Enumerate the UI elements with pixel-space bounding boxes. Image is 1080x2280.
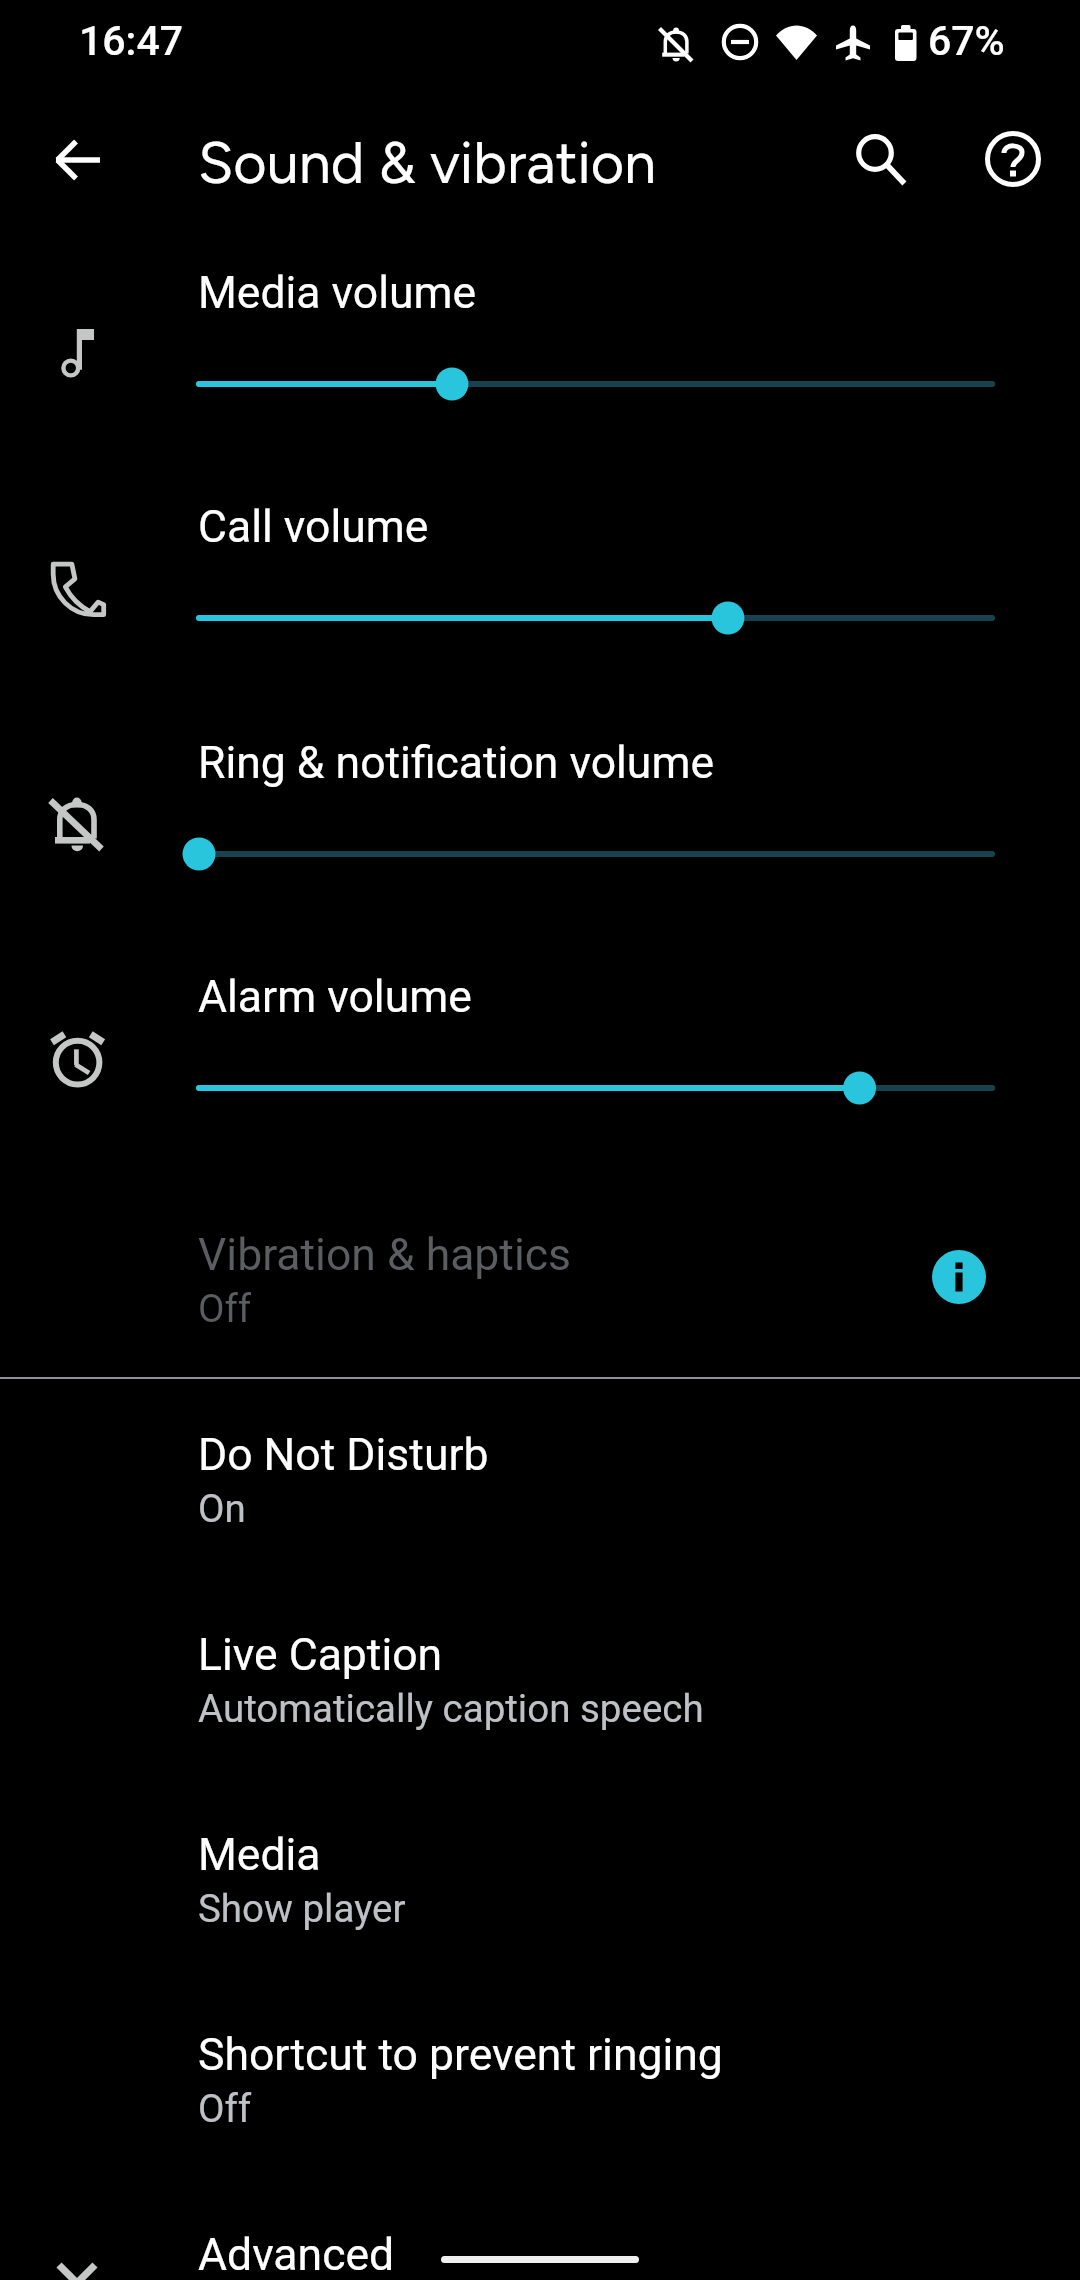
staticText: Automatically caption speech xyxy=(198,1686,704,1731)
button[interactable]: Do Not Disturb xyxy=(0,1381,1080,1561)
staticText: Do Not Disturb xyxy=(198,1429,489,1481)
staticText: Advanced xyxy=(198,2229,395,2280)
button[interactable]: Media xyxy=(0,1781,1080,1961)
button[interactable]: Navigate up xyxy=(30,113,124,207)
button[interactable]: Advanced xyxy=(0,2198,1080,2280)
staticText: Vibration & haptics xyxy=(198,1229,571,1281)
button[interactable]: Help xyxy=(966,112,1060,206)
button[interactable]: Search settings xyxy=(829,112,923,206)
button[interactable]: Live Caption xyxy=(0,1581,1080,1761)
button[interactable]: Call volume xyxy=(0,468,1080,683)
staticText: Off xyxy=(198,1286,252,1331)
staticText: 67% xyxy=(928,17,1005,65)
staticText: Ring & notification volume xyxy=(198,737,715,789)
staticText: Show player xyxy=(198,1886,406,1931)
button[interactable]: Ring & notification volume xyxy=(0,704,1080,919)
staticText: Call volume xyxy=(198,501,429,553)
button[interactable]: Shortcut to prevent ringing xyxy=(0,1981,1080,2161)
button[interactable]: Media volume xyxy=(0,234,1080,449)
button[interactable]: Alarm volume xyxy=(0,938,1080,1153)
staticText: Live Caption xyxy=(198,1629,443,1681)
staticText: Media volume xyxy=(198,267,477,319)
staticText: Sound & vibration xyxy=(198,128,657,197)
staticText: 16:47 xyxy=(79,17,184,65)
button[interactable]: Vibration & haptics xyxy=(0,1181,1080,1361)
button[interactable]: More information xyxy=(932,1250,986,1304)
staticText: Shortcut to prevent ringing xyxy=(198,2029,723,2081)
staticText: Off xyxy=(198,2086,252,2131)
staticText: Media xyxy=(198,1829,321,1881)
staticText: On xyxy=(198,1486,246,1531)
staticText: Alarm volume xyxy=(198,971,472,1023)
